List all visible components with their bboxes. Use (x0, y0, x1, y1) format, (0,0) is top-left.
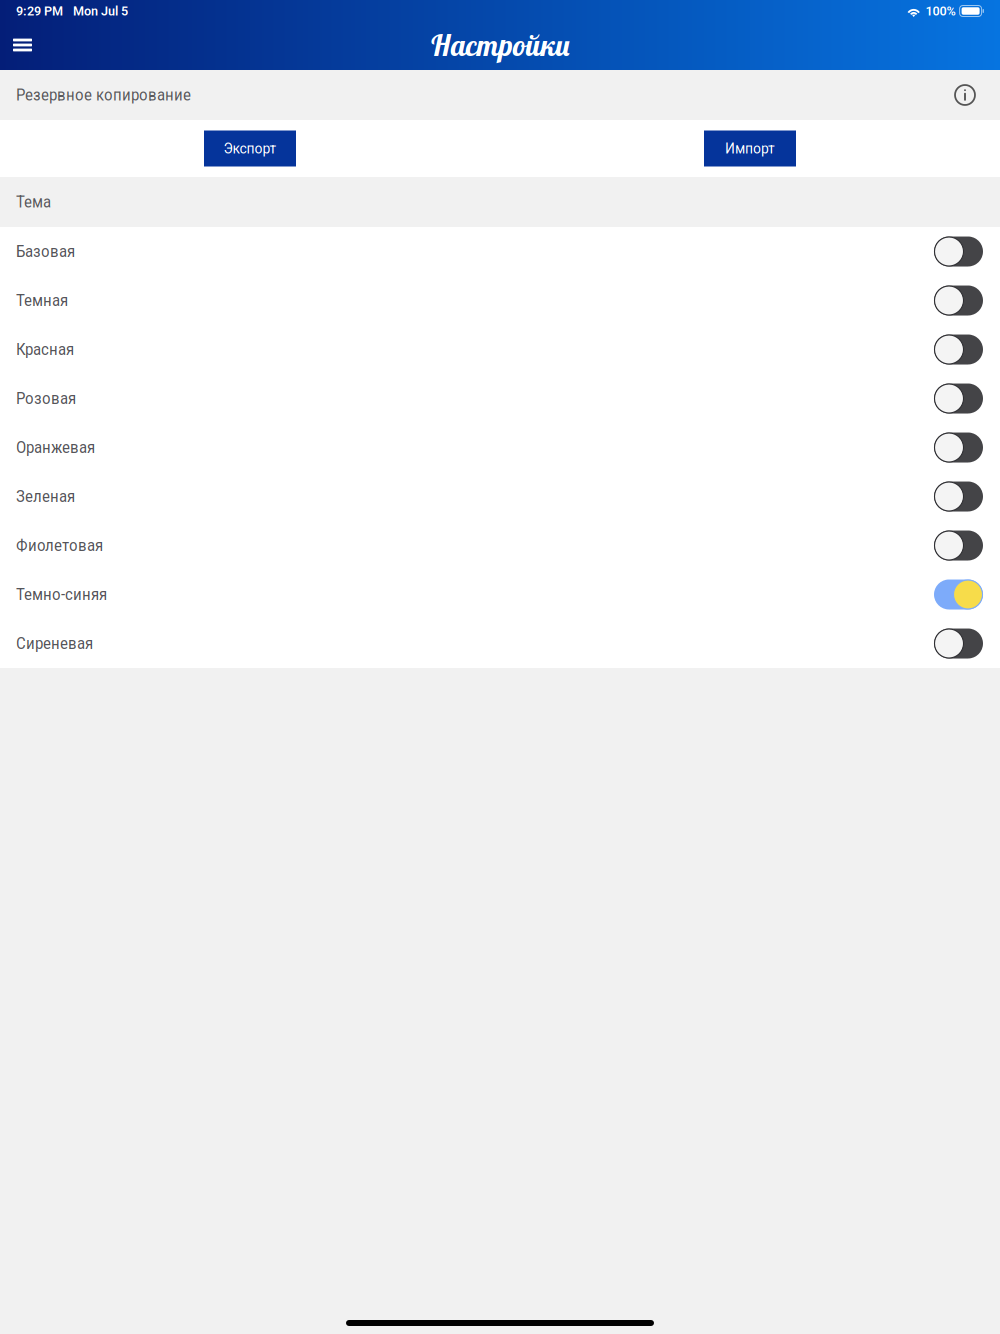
staticText: Красная (16, 340, 74, 359)
staticText: Базовая (16, 242, 75, 261)
button[interactable]: Сиреневая (0, 619, 1000, 668)
staticText: Темная (16, 291, 68, 310)
staticText: Фиолетовая (16, 536, 103, 555)
staticText: Импорт (725, 140, 775, 157)
button[interactable]: Экспорт (204, 130, 296, 166)
button[interactable]: Темно-синяя (0, 570, 1000, 619)
button[interactable]: Фиолетовая (0, 521, 1000, 570)
staticText: Резервное копирование (16, 86, 191, 104)
button[interactable]: Розовая (0, 374, 1000, 423)
button[interactable]: Темная (0, 276, 1000, 325)
staticText: Оранжевая (16, 438, 95, 457)
staticText: 9:29 PM (16, 3, 63, 19)
button[interactable]: Оранжевая (0, 423, 1000, 472)
staticText: Зеленая (16, 487, 75, 506)
staticText: Тема (16, 193, 51, 211)
staticText: Настройки (431, 27, 569, 63)
staticText: Экспорт (223, 140, 276, 157)
button[interactable]: Базовая (0, 227, 1000, 276)
staticText: Сиреневая (16, 634, 93, 653)
button[interactable]: Menu (0, 26, 45, 63)
button[interactable]: Красная (0, 325, 1000, 374)
staticText: 100% (926, 3, 956, 19)
button[interactable]: Импорт (704, 130, 796, 166)
button[interactable]: Information (954, 84, 976, 106)
staticText: Mon Jul 5 (73, 3, 128, 19)
button[interactable]: Зеленая (0, 472, 1000, 521)
staticText: Темно-синяя (16, 585, 107, 604)
staticText: Розовая (16, 389, 76, 408)
